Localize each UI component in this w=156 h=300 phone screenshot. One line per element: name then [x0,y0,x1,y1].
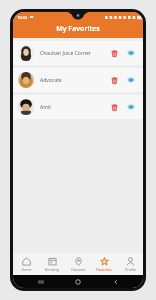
staticText: Advocate [40,77,62,84]
staticText: My Favorites [56,24,100,34]
staticText: 10:53 [17,15,28,20]
button[interactable]: View Amit [124,100,138,114]
staticText: Discover [71,267,86,272]
button[interactable]: Advocate [13,68,143,92]
button[interactable]: Favorites [91,253,117,275]
staticText: Profile [125,267,136,272]
staticText: Amit [40,104,51,111]
button[interactable]: Recents [31,275,51,288]
staticText: Booking [45,267,59,272]
staticText: Home [21,267,32,272]
button[interactable]: Profile [117,253,143,275]
button[interactable]: Home [68,275,88,288]
button[interactable]: Discover [65,253,91,275]
button[interactable]: Delete Advocate [107,73,121,87]
button[interactable]: View Advocate [124,73,138,87]
staticText: Chauhan Juice Corner [40,50,91,57]
button[interactable]: Delete Chauhan Juice Corner [107,46,121,60]
button[interactable]: Booking [39,253,65,275]
button[interactable]: Home [13,253,39,275]
button[interactable]: Back [106,275,126,288]
button[interactable]: Delete Amit [107,100,121,114]
staticText: Favorites [96,267,112,272]
button[interactable]: Chauhan Juice Corner [13,41,143,65]
button[interactable]: Amit [13,95,143,119]
button[interactable]: View Chauhan Juice Corner [124,46,138,60]
